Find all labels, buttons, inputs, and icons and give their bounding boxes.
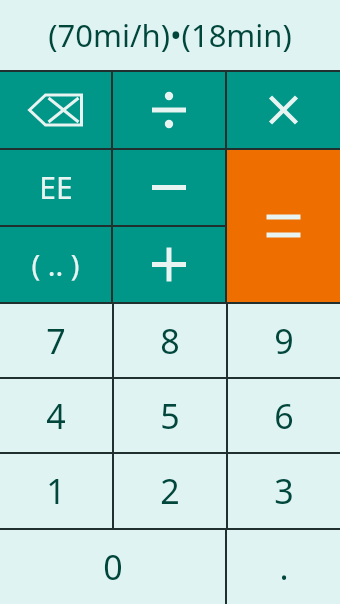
button[interactable]: 5: [114, 379, 226, 452]
button[interactable]: EE: [0, 150, 111, 225]
button[interactable]: 2: [114, 454, 226, 528]
button[interactable]: Minus: [113, 150, 225, 225]
button[interactable]: Plus: [113, 227, 225, 302]
button[interactable]: 8: [114, 304, 226, 377]
button[interactable]: ( .. ): [0, 227, 111, 302]
button[interactable]: Divide: [113, 72, 225, 148]
button[interactable]: 7: [0, 304, 112, 377]
staticText: 4: [46, 393, 66, 439]
staticText: 9: [274, 318, 294, 364]
button[interactable]: 1: [0, 454, 112, 528]
staticText: 0: [103, 544, 123, 590]
staticText: 1: [46, 468, 66, 514]
button[interactable]: Backspace: [0, 72, 111, 148]
staticText: (70mi/h)•(18min): [48, 14, 292, 56]
staticText: 6: [274, 393, 294, 439]
staticText: 7: [46, 318, 66, 364]
staticText: ( .. ): [31, 245, 80, 284]
button[interactable]: .: [227, 530, 340, 604]
button[interactable]: 4: [0, 379, 112, 452]
staticText: 8: [160, 318, 180, 364]
staticText: EE: [39, 167, 73, 208]
button[interactable]: Multiply: [227, 72, 340, 148]
staticText: 3: [274, 468, 294, 514]
staticText: .: [279, 544, 289, 590]
button[interactable]: 6: [228, 379, 340, 452]
button[interactable]: Equals: [227, 150, 340, 302]
button[interactable]: 9: [228, 304, 340, 377]
button[interactable]: 0: [0, 530, 225, 604]
button[interactable]: 3: [228, 454, 340, 528]
staticText: 2: [160, 468, 180, 514]
staticText: 5: [160, 393, 180, 439]
